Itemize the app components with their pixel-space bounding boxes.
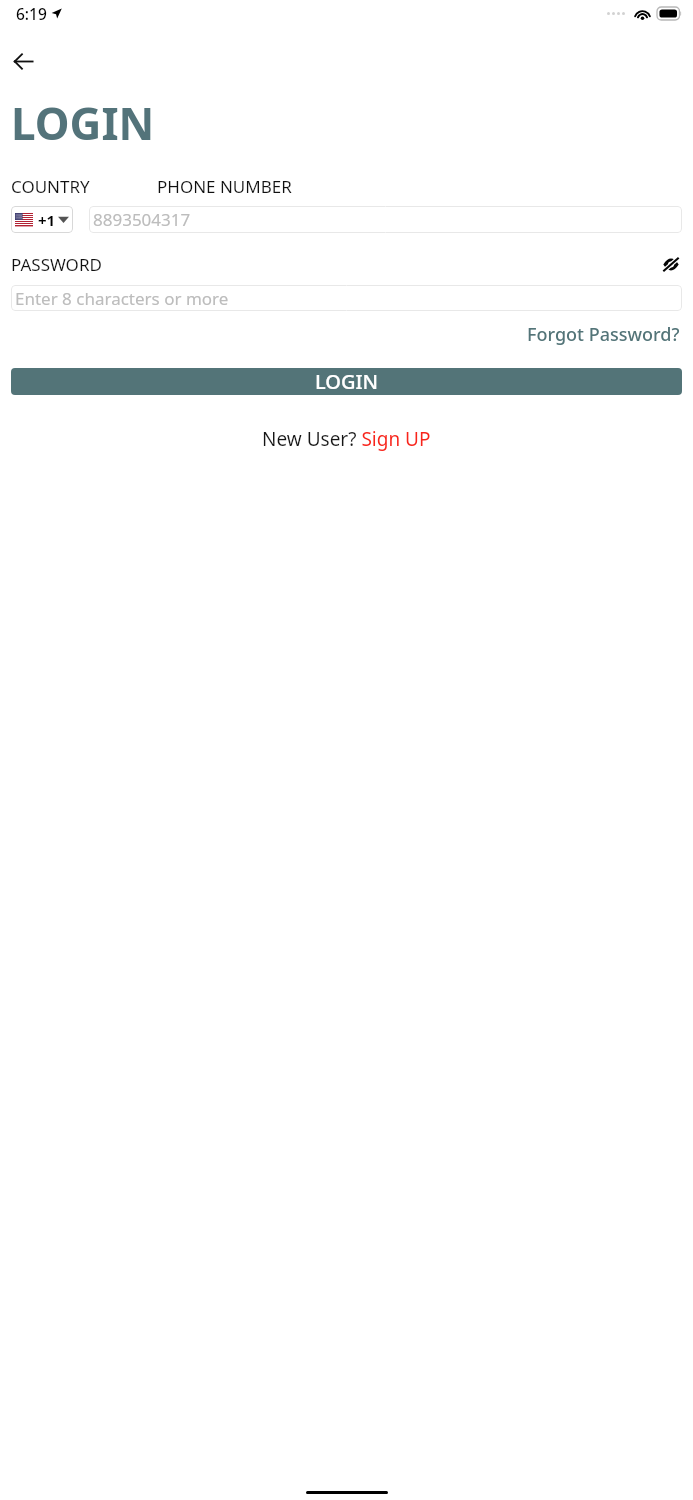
staticText: PASSWORD xyxy=(11,253,102,276)
staticText: Forgot Password? xyxy=(527,322,680,347)
staticText: PHONE NUMBER xyxy=(157,175,292,198)
staticText: Enter 8 characters or more xyxy=(15,287,229,310)
staticText: +1 xyxy=(38,210,56,230)
button[interactable]: Enter 8 characters or more xyxy=(11,285,682,311)
button[interactable]: 8893504317 xyxy=(89,206,682,233)
staticText: New User? Sign UP xyxy=(262,426,431,452)
button[interactable]: New User? Sign UP xyxy=(258,422,435,456)
button[interactable]: LOGIN xyxy=(11,368,682,395)
button[interactable]: Forgot Password? xyxy=(525,320,682,349)
button[interactable]: Show password xyxy=(658,251,684,277)
staticText: COUNTRY xyxy=(11,175,90,198)
staticText: 8893504317 xyxy=(93,208,191,231)
button[interactable]: +1 xyxy=(11,206,73,233)
button[interactable]: Back xyxy=(8,46,38,76)
staticText: LOGIN xyxy=(315,368,379,395)
staticText: LOGIN xyxy=(11,93,155,153)
staticText: 6:19 xyxy=(16,3,47,24)
